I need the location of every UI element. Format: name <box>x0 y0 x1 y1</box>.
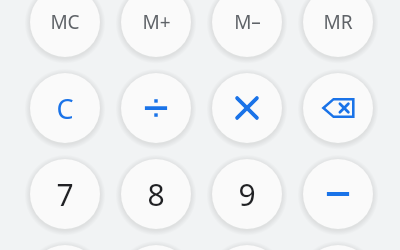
button[interactable]: MC <box>30 0 100 57</box>
staticText: 9 <box>238 174 256 215</box>
button[interactable]: 6 <box>212 245 282 250</box>
button[interactable]: 8 <box>121 159 191 229</box>
staticText: M– <box>234 9 261 35</box>
button[interactable]: Minus <box>303 159 373 229</box>
staticText: 7 <box>56 174 74 215</box>
staticText: M+ <box>142 9 171 35</box>
staticText: MC <box>50 9 80 35</box>
staticText: 8 <box>147 174 165 215</box>
button[interactable]: 4 <box>30 245 100 250</box>
staticText: C <box>56 90 74 127</box>
button[interactable]: 5 <box>121 245 191 250</box>
button[interactable]: Clear <box>30 73 100 143</box>
button[interactable]: Backspace <box>303 73 373 143</box>
button[interactable]: Divide <box>121 73 191 143</box>
button[interactable]: M– <box>212 0 282 57</box>
button[interactable]: 7 <box>30 159 100 229</box>
button[interactable]: M+ <box>121 0 191 57</box>
button[interactable]: Plus <box>303 245 373 250</box>
staticText: MR <box>323 9 353 35</box>
button[interactable]: 9 <box>212 159 282 229</box>
button[interactable]: MR <box>303 0 373 57</box>
button[interactable]: Multiply <box>212 73 282 143</box>
